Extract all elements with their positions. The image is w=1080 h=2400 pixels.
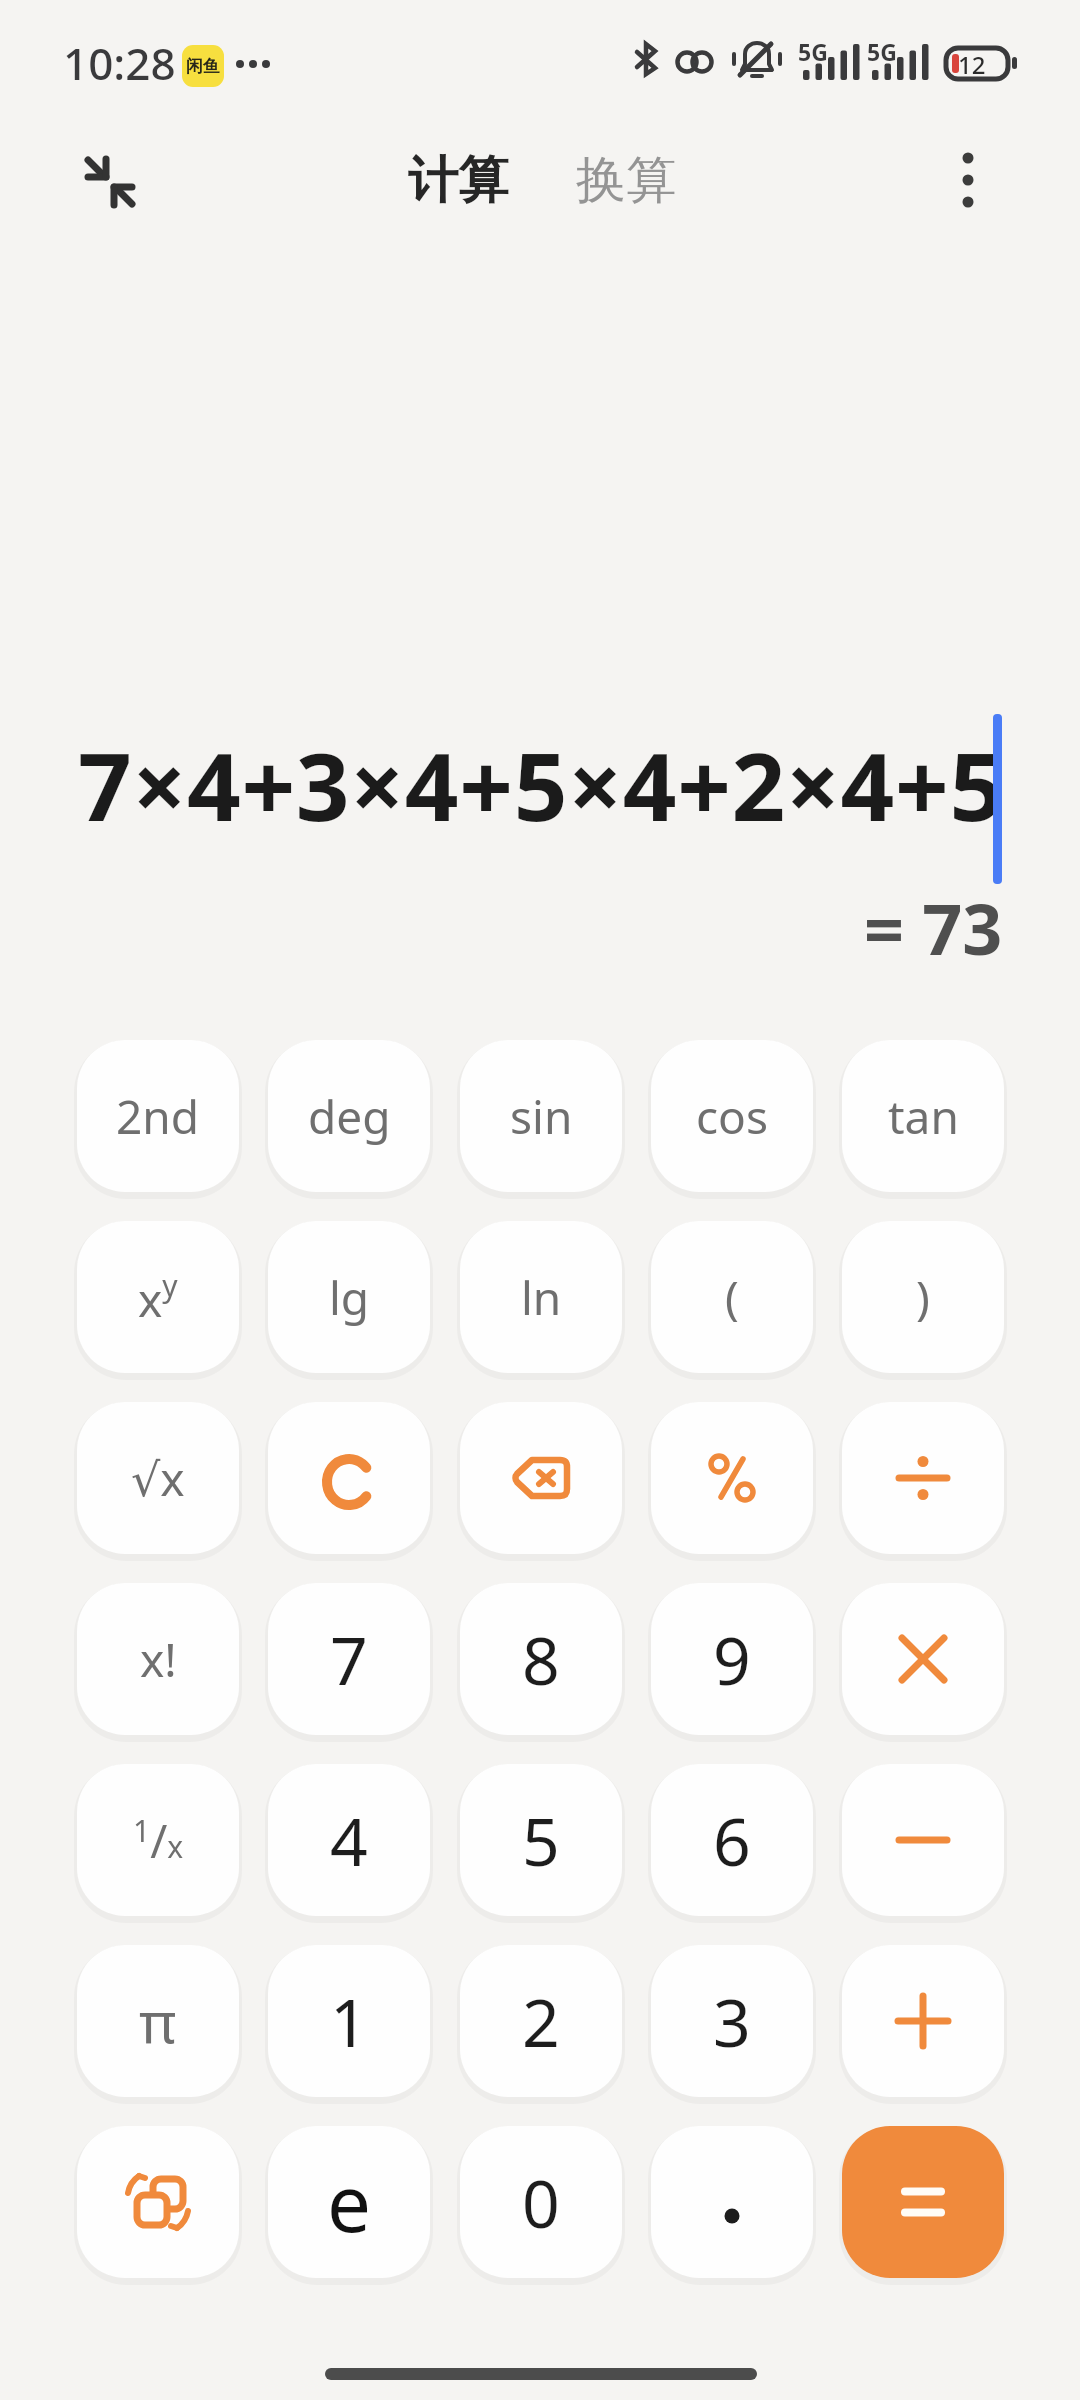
button[interactable]: cos — [651, 1040, 813, 1192]
staticText: 换算 — [576, 149, 676, 212]
staticText: xy — [138, 1265, 178, 1330]
staticText: 0 — [522, 2157, 560, 2247]
staticText: 5G — [867, 36, 897, 67]
staticText: 7×4+3×4+5×4+2×4+5 — [78, 721, 1004, 849]
button[interactable]: 9 — [651, 1583, 813, 1735]
button[interactable] — [268, 1402, 430, 1554]
staticText: 1 — [330, 1976, 368, 2066]
button[interactable]: 1 — [268, 1945, 430, 2097]
button[interactable]: 计算 — [395, 140, 520, 220]
button[interactable]: 8 — [460, 1583, 622, 1735]
staticText: sin — [510, 1085, 573, 1148]
button[interactable] — [930, 142, 1006, 218]
staticText: 6 — [713, 1795, 751, 1885]
button[interactable] — [842, 1945, 1004, 2097]
button[interactable]: 5 — [460, 1764, 622, 1916]
button[interactable] — [651, 1402, 813, 1554]
staticText: π — [139, 1982, 177, 2060]
staticText: e — [327, 2149, 371, 2255]
button[interactable]: ) — [842, 1221, 1004, 1373]
staticText: tan — [888, 1085, 959, 1148]
staticText: √x — [131, 1447, 185, 1510]
button[interactable] — [842, 1764, 1004, 1916]
button[interactable]: xy — [77, 1221, 239, 1373]
button[interactable]: 2 — [460, 1945, 622, 2097]
button[interactable]: e — [268, 2126, 430, 2278]
button[interactable]: sin — [460, 1040, 622, 1192]
button[interactable] — [460, 1402, 622, 1554]
button[interactable]: tan — [842, 1040, 1004, 1192]
button[interactable]: 2nd — [77, 1040, 239, 1192]
staticText: 7 — [330, 1614, 368, 1704]
button[interactable] — [651, 2126, 813, 2278]
button[interactable] — [842, 1402, 1004, 1554]
staticText: cos — [696, 1085, 768, 1148]
staticText: 2nd — [116, 1085, 200, 1148]
staticText: 5 — [522, 1795, 560, 1885]
button[interactable]: x! — [77, 1583, 239, 1735]
button[interactable]: ( — [651, 1221, 813, 1373]
staticText: 1/x — [133, 1809, 184, 1872]
staticText: 3 — [713, 1976, 751, 2066]
staticText: deg — [308, 1085, 391, 1148]
staticText: 2 — [522, 1976, 560, 2066]
staticText: 5G — [798, 36, 828, 67]
button[interactable]: 1/x — [77, 1764, 239, 1916]
staticText: 8 — [522, 1614, 560, 1704]
button[interactable] — [842, 2126, 1004, 2278]
staticText: 计算 — [408, 149, 508, 212]
button[interactable]: 4 — [268, 1764, 430, 1916]
button[interactable] — [77, 2126, 239, 2278]
button[interactable]: π — [77, 1945, 239, 2097]
button[interactable]: 6 — [651, 1764, 813, 1916]
button[interactable] — [842, 1583, 1004, 1735]
staticText: ( — [725, 1266, 739, 1329]
button[interactable]: lg — [268, 1221, 430, 1373]
button[interactable]: deg — [268, 1040, 430, 1192]
button[interactable]: 0 — [460, 2126, 622, 2278]
staticText: 12 — [958, 48, 986, 81]
button[interactable]: √x — [77, 1402, 239, 1554]
staticText: 10:28 — [63, 33, 176, 93]
staticText: x! — [140, 1628, 177, 1691]
button[interactable] — [70, 142, 150, 222]
button[interactable]: ln — [460, 1221, 622, 1373]
staticText: ln — [521, 1266, 562, 1329]
staticText: 闲鱼 — [186, 56, 220, 77]
button[interactable]: 换算 — [563, 140, 688, 220]
staticText: = 73 — [864, 880, 1003, 970]
staticText: lg — [329, 1266, 370, 1329]
staticText: 9 — [713, 1614, 751, 1704]
button[interactable]: 3 — [651, 1945, 813, 2097]
staticText: ) — [916, 1266, 930, 1329]
staticText: 4 — [330, 1795, 368, 1885]
button[interactable]: 7 — [268, 1583, 430, 1735]
